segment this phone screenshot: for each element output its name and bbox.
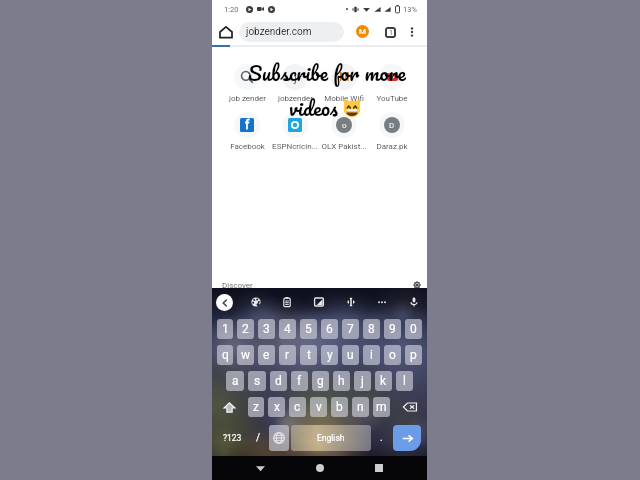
button[interactable]: o [320, 112, 368, 151]
button[interactable]: 6 [321, 319, 338, 339]
staticText: l [403, 374, 406, 388]
button[interactable]: b [331, 397, 348, 417]
staticText: Subscribe for more [248, 55, 406, 90]
button[interactable]: More [373, 293, 391, 311]
staticText: 4 [284, 322, 291, 336]
button[interactable]: 9 [384, 319, 401, 339]
button[interactable]: Enter [393, 425, 421, 451]
button[interactable]: k [375, 371, 392, 391]
staticText: g [317, 374, 324, 388]
button[interactable]: More options [404, 24, 420, 40]
button[interactable]: t [300, 345, 317, 365]
button[interactable]: 7 [342, 319, 359, 339]
button[interactable]: o [384, 345, 401, 365]
button[interactable]: ?123 [221, 425, 243, 451]
button[interactable]: Change language [269, 425, 289, 451]
button[interactable]: Resize keyboard [310, 293, 328, 311]
button[interactable]: j [354, 371, 371, 391]
button[interactable]: d [270, 371, 287, 391]
button[interactable]: 8 [363, 319, 380, 339]
button[interactable]: 3 [258, 319, 275, 339]
button[interactable]: Tabs [382, 24, 398, 40]
button[interactable]: f [291, 371, 308, 391]
staticText: Facebook [230, 142, 265, 151]
staticText: Discover [222, 281, 253, 290]
staticText: p [410, 348, 417, 362]
button[interactable]: Voice input [405, 293, 423, 311]
staticText: e [263, 348, 270, 362]
staticText: v [316, 400, 322, 414]
button[interactable]: M [320, 64, 368, 103]
button[interactable]: 5 [300, 319, 317, 339]
button[interactable]: w [237, 345, 254, 365]
staticText: M [359, 27, 366, 36]
button[interactable]: i [363, 345, 380, 365]
button[interactable]: 4 [279, 319, 296, 339]
button[interactable]: z [248, 397, 264, 417]
button[interactable]: D [368, 112, 416, 151]
button[interactable]: e [258, 345, 275, 365]
staticText: jobzender.com [246, 26, 312, 38]
staticText: 1:20 [224, 5, 239, 14]
button[interactable]: c [289, 397, 306, 417]
button[interactable]: l [396, 371, 413, 391]
staticText: n [357, 400, 364, 414]
staticText: Mobile Wifi [324, 94, 364, 103]
button[interactable]: h [333, 371, 350, 391]
button[interactable]: j [271, 64, 319, 103]
button[interactable]: Backspace [392, 394, 427, 420]
staticText: YouTube [376, 94, 408, 103]
button[interactable]: job zender [223, 64, 271, 103]
staticText: w [241, 348, 251, 362]
button[interactable]: Account [356, 25, 369, 38]
staticText: 6 [326, 322, 333, 336]
staticText: . [380, 432, 383, 444]
button[interactable]: ESPNcricin... [271, 112, 319, 151]
button[interactable]: m [373, 397, 390, 417]
button[interactable]: Clipboard [278, 293, 296, 311]
staticText: ESPNcricin... [272, 142, 318, 151]
button[interactable]: 0 [405, 319, 422, 339]
staticText: Daraz.pk [376, 142, 408, 151]
staticText: j [294, 70, 297, 84]
staticText: x [274, 400, 280, 414]
button[interactable]: a [226, 371, 244, 391]
button[interactable]: English [291, 425, 371, 451]
staticText: o [389, 348, 396, 362]
button[interactable]: y [321, 345, 338, 365]
staticText: d [275, 374, 282, 388]
staticText: 1 [389, 29, 393, 37]
button[interactable]: Back [248, 456, 272, 480]
staticText: M [339, 70, 350, 84]
button[interactable]: Shift [212, 394, 246, 420]
staticText: f [297, 374, 302, 388]
button[interactable]: jobzender.com [239, 22, 344, 42]
button[interactable]: p [405, 345, 422, 365]
button[interactable]: YouTube [368, 64, 416, 103]
button[interactable]: s [248, 371, 266, 391]
staticText: f [245, 118, 250, 132]
button[interactable]: 2 [237, 319, 254, 339]
button[interactable]: Home [308, 456, 332, 480]
button[interactable]: x [268, 397, 285, 417]
button[interactable]: r [279, 345, 296, 365]
button[interactable]: Move cursor [342, 293, 360, 311]
button[interactable]: / [250, 425, 266, 451]
button[interactable]: v [310, 397, 327, 417]
staticText: 7 [347, 322, 354, 336]
button[interactable]: Recent apps [367, 456, 391, 480]
button[interactable]: q [217, 345, 233, 365]
staticText: a [232, 374, 239, 388]
button[interactable]: Back [216, 294, 233, 311]
staticText: u [347, 348, 354, 362]
button[interactable]: f [223, 112, 271, 151]
button[interactable]: Home [218, 24, 234, 40]
staticText: 1 [222, 322, 229, 336]
button[interactable]: n [352, 397, 369, 417]
button[interactable]: . [373, 425, 389, 451]
button[interactable]: u [342, 345, 359, 365]
button[interactable]: 1 [217, 319, 233, 339]
button[interactable]: g [312, 371, 329, 391]
button[interactable]: Theme [247, 293, 265, 311]
staticText: 2 [242, 322, 249, 336]
